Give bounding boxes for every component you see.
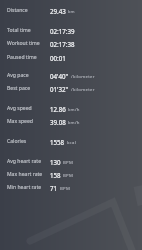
button[interactable]: Avg heart rate <box>0 155 142 168</box>
staticText: 02:17:38 <box>50 40 75 48</box>
staticText: 1558 <box>50 138 65 146</box>
staticText: Max heart rate <box>7 171 43 178</box>
staticText: Avg pace <box>7 72 29 79</box>
staticText: BPM <box>63 172 74 178</box>
staticText: Calories <box>7 138 27 145</box>
button[interactable]: Calories <box>0 135 142 148</box>
staticText: kcal <box>67 139 77 145</box>
staticText: Best pace <box>7 85 31 92</box>
staticText: /kilometer <box>71 86 95 92</box>
staticText: Avg speed <box>7 105 32 112</box>
button[interactable]: Best pace <box>0 82 142 95</box>
staticText: 04'40" <box>50 72 69 80</box>
button[interactable]: Workout time <box>0 37 142 50</box>
staticText: 39.08 <box>50 118 66 126</box>
staticText: km/h <box>68 106 80 112</box>
staticText: Distance <box>7 7 28 14</box>
staticText: 158 <box>50 171 61 179</box>
button[interactable]: Avg speed <box>0 102 142 115</box>
staticText: Min heart rate <box>7 184 42 191</box>
button[interactable]: Avg pace <box>0 69 142 82</box>
button[interactable]: Min heart rate <box>0 181 142 194</box>
button[interactable]: Max speed <box>0 115 142 128</box>
staticText: Max speed <box>7 118 33 125</box>
staticText: 01'32" <box>50 85 69 93</box>
staticText: BPM <box>63 159 74 165</box>
staticText: Paused time <box>7 54 37 61</box>
button[interactable]: Max heart rate <box>0 168 142 181</box>
staticText: 29.43 <box>50 7 66 15</box>
button[interactable]: Paused time <box>0 51 142 64</box>
staticText: 00:01 <box>50 54 66 62</box>
staticText: BPM <box>60 185 71 191</box>
button[interactable]: Total time <box>0 24 142 37</box>
staticText: Workout time <box>7 40 40 47</box>
staticText: km <box>68 8 75 14</box>
staticText: /kilometer <box>71 73 95 79</box>
staticText: km/h <box>68 119 80 125</box>
staticText: Avg heart rate <box>7 158 42 165</box>
staticText: 02:17:39 <box>50 27 75 35</box>
button[interactable]: Distance <box>0 4 142 17</box>
staticText: Total time <box>7 27 31 34</box>
staticText: 71 <box>50 184 58 192</box>
staticText: 130 <box>50 158 61 166</box>
staticText: 12.86 <box>50 105 66 113</box>
